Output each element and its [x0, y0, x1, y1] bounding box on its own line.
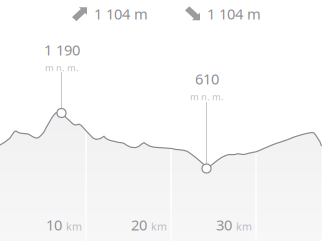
staticText: 10: [46, 215, 62, 234]
staticText: m n. m.: [45, 61, 79, 74]
staticText: 1 190: [44, 40, 80, 59]
staticText: 1 104 m: [94, 4, 148, 23]
staticText: 610: [195, 69, 219, 88]
staticText: 1 104 m: [207, 4, 261, 23]
staticText: m n. m.: [190, 90, 224, 103]
staticText: km: [151, 219, 167, 233]
staticText: km: [66, 219, 82, 233]
button[interactable]: 1 104 m: [73, 4, 148, 23]
button[interactable]: 1 104 m: [186, 4, 261, 23]
staticText: 20: [131, 215, 147, 234]
staticText: 30: [216, 215, 232, 234]
staticText: km: [236, 219, 252, 233]
